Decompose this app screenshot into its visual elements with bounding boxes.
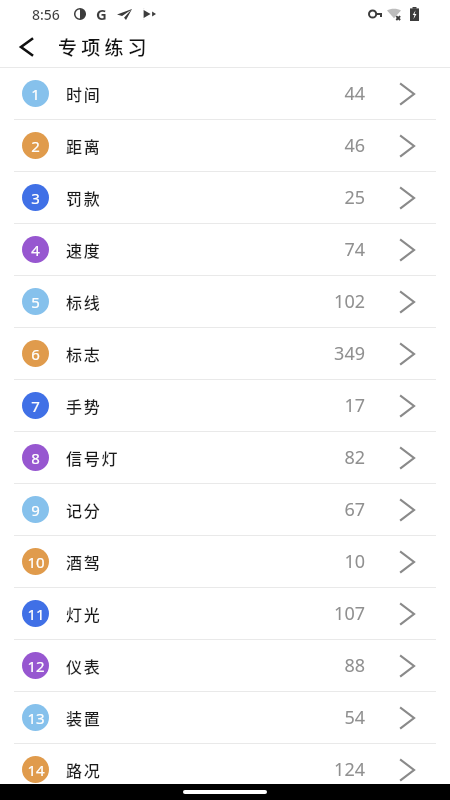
button[interactable]: 9 (0, 484, 450, 536)
button[interactable]: 10 (0, 536, 450, 588)
button[interactable]: 2 (0, 120, 450, 172)
staticText: 8 (31, 448, 40, 468)
staticText: 349 (305, 341, 365, 366)
staticText: 路况 (66, 758, 102, 781)
staticText: 107 (305, 601, 365, 626)
staticText: 记分 (66, 498, 102, 521)
staticText: 124 (305, 757, 365, 782)
staticText: 时间 (66, 82, 102, 105)
button[interactable]: 12 (0, 640, 450, 692)
button[interactable]: Back (13, 34, 39, 60)
staticText: 46 (305, 133, 365, 158)
staticText: 25 (305, 185, 365, 210)
staticText: 装置 (66, 706, 102, 729)
button[interactable]: 4 (0, 224, 450, 276)
staticText: 6 (31, 344, 40, 364)
button[interactable]: 11 (0, 588, 450, 640)
staticText: 8:56 (32, 5, 60, 24)
staticText: 手势 (66, 394, 102, 417)
staticText: 11 (27, 604, 45, 624)
staticText: 2 (31, 136, 40, 156)
staticText: 82 (305, 445, 365, 470)
staticText: 13 (27, 708, 45, 728)
staticText: 102 (305, 289, 365, 314)
staticText: 54 (305, 705, 365, 730)
staticText: 4 (31, 240, 40, 260)
button[interactable]: 1 (0, 68, 450, 120)
staticText: 灯光 (66, 602, 102, 625)
button[interactable]: 7 (0, 380, 450, 432)
staticText: 5 (31, 292, 40, 312)
staticText: 标志 (66, 342, 102, 365)
staticText: 44 (305, 81, 365, 106)
staticText: 速度 (66, 238, 102, 261)
staticText: 1 (31, 84, 40, 104)
staticText: 10 (27, 552, 45, 572)
button[interactable]: 3 (0, 172, 450, 224)
staticText: 88 (305, 653, 365, 678)
staticText: 67 (305, 497, 365, 522)
button[interactable]: 14 (0, 744, 450, 796)
staticText: 74 (305, 237, 365, 262)
button[interactable]: 13 (0, 692, 450, 744)
button[interactable]: 6 (0, 328, 450, 380)
staticText: 7 (31, 396, 40, 416)
staticText: 信号灯 (66, 446, 120, 469)
staticText: 罚款 (66, 186, 102, 209)
staticText: 距离 (66, 134, 102, 157)
staticText: 标线 (66, 290, 102, 313)
staticText: 酒驾 (66, 550, 102, 573)
button[interactable]: 5 (0, 276, 450, 328)
staticText: 9 (31, 500, 40, 520)
staticText: 12 (27, 656, 45, 676)
staticText: 仪表 (66, 654, 102, 677)
staticText: 17 (305, 393, 365, 418)
staticText: 专项练习 (58, 33, 151, 61)
staticText: G (96, 4, 107, 24)
staticText: 10 (305, 549, 365, 574)
staticText: 3 (31, 188, 40, 208)
button[interactable]: 8 (0, 432, 450, 484)
staticText: 14 (27, 760, 45, 780)
